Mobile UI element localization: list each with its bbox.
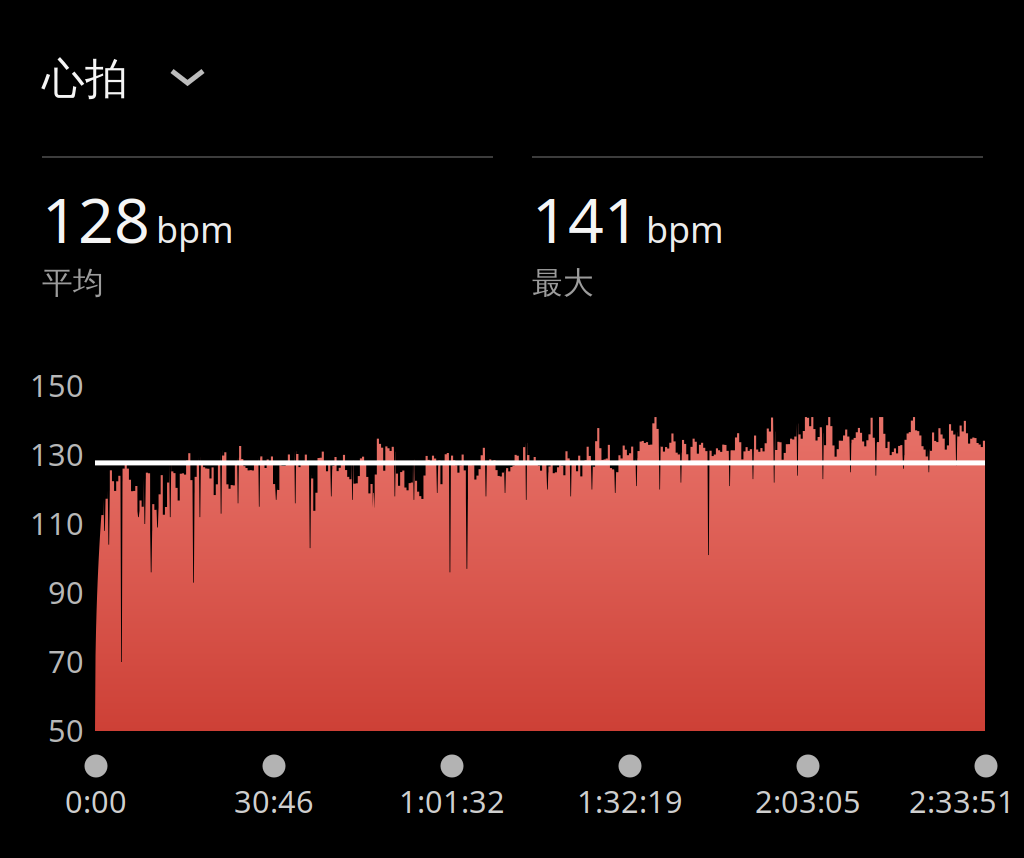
staticText: 2:33:51 — [909, 781, 1015, 821]
staticText: 70 — [48, 641, 84, 681]
staticText: 50 — [48, 710, 84, 750]
staticText: 0:00 — [65, 781, 127, 821]
staticText: 141 — [532, 177, 640, 260]
staticText: 128 — [42, 177, 150, 260]
staticText: 最大 — [532, 264, 594, 302]
staticText: 130 — [30, 434, 84, 474]
staticText: 平均 — [42, 264, 104, 302]
staticText: bpm — [646, 205, 724, 253]
staticText: 30:46 — [234, 781, 314, 821]
staticText: 心拍 — [42, 53, 128, 105]
staticText: 2:03:05 — [755, 781, 861, 821]
staticText: 90 — [48, 572, 84, 612]
staticText: bpm — [156, 205, 234, 253]
staticText: 110 — [30, 503, 84, 543]
button[interactable]: 心拍 — [42, 51, 213, 107]
staticText: 150 — [30, 365, 84, 405]
staticText: 1:32:19 — [577, 781, 683, 821]
staticText: 1:01:32 — [399, 781, 505, 821]
